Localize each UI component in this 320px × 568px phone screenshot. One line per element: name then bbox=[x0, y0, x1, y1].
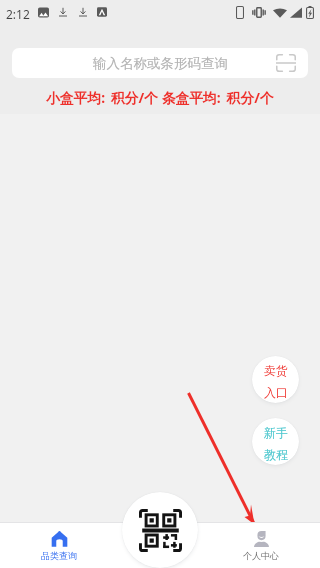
button[interactable]: Scan barcode bbox=[122, 492, 198, 568]
staticText: 入口 bbox=[264, 385, 288, 400]
staticText: 卖货 bbox=[264, 363, 288, 378]
staticText: 新手 bbox=[264, 425, 288, 440]
staticText: 输入名称或条形码查询 bbox=[93, 55, 228, 72]
button[interactable]: 品类查询 bbox=[0, 530, 118, 561]
button[interactable]: 新手 bbox=[252, 418, 299, 465]
staticText: 小盒平均: 积分/个 条盒平均: 积分/个 bbox=[46, 88, 274, 107]
staticText: 个人中心 bbox=[243, 550, 279, 561]
staticText: 品类查询 bbox=[41, 550, 77, 561]
staticText: 教程 bbox=[264, 447, 288, 462]
staticText: 2:12 bbox=[6, 6, 30, 22]
button[interactable]: Scan barcode bbox=[264, 48, 308, 78]
button[interactable]: 卖货 bbox=[252, 356, 299, 403]
button[interactable]: 输入名称或条形码查询 bbox=[12, 48, 308, 78]
button[interactable]: 个人中心 bbox=[202, 530, 320, 561]
